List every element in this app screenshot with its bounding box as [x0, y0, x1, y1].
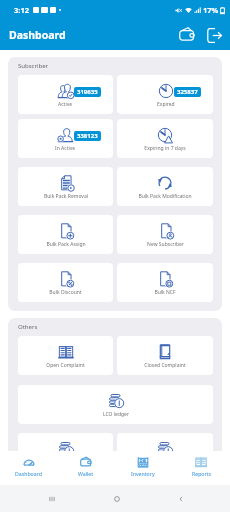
staticText: Bulk Discount [49, 289, 82, 296]
button[interactable] [18, 433, 113, 472]
button[interactable]: Bulk Pack Removal [18, 167, 113, 206]
staticText: Wallet [78, 470, 94, 477]
button[interactable]: Closed Complaint [117, 336, 213, 375]
staticText: Expired [157, 101, 175, 108]
button[interactable]: Open Complaint [18, 336, 113, 375]
staticText: 325837 [177, 88, 198, 96]
button[interactable]: Logout [200, 22, 226, 48]
staticText: Inventory [131, 470, 155, 477]
button[interactable]: 325837 [117, 75, 213, 114]
staticText: Expiring in 7 days [144, 145, 186, 152]
button[interactable]: Wallet [57, 451, 114, 485]
button[interactable]: Home [104, 486, 129, 511]
button[interactable]: 338123 [18, 119, 113, 158]
staticText: 17% [203, 5, 219, 15]
button[interactable]: Reports [172, 451, 230, 485]
staticText: Open Complaint [46, 362, 85, 369]
button[interactable]: Dashboard [0, 451, 57, 485]
button[interactable] [117, 433, 213, 472]
staticText: Bulk Pack Modification [138, 193, 192, 200]
staticText: Active [58, 101, 73, 108]
staticText: In Active [55, 145, 76, 152]
button[interactable]: Expiring in 7 days [117, 119, 213, 158]
button[interactable]: New Subscriber [117, 215, 213, 254]
staticText: Bulk NCF [154, 289, 176, 296]
staticText: 338123 [77, 132, 98, 140]
button[interactable]: Inventory [114, 451, 172, 485]
staticText: LCO ledger [103, 411, 129, 418]
staticText: Bulk Pack Removal [44, 193, 88, 200]
staticText: Subscriber [18, 62, 49, 70]
staticText: 319635 [77, 88, 98, 96]
staticText: 3:12 [14, 5, 29, 15]
staticText: Dashboard [15, 470, 42, 477]
staticText: New Subscriber [147, 241, 184, 248]
button[interactable]: Bulk Pack Modification [117, 167, 213, 206]
staticText: Dashboard [9, 28, 66, 42]
button[interactable]: Bulk NCF [117, 263, 213, 302]
button[interactable]: Wallet [174, 22, 200, 48]
button[interactable]: Recents [39, 486, 64, 511]
staticText: Closed Complaint [144, 362, 186, 369]
button[interactable]: Bulk Pack Assign [18, 215, 113, 254]
staticText: Bulk Pack Assign [46, 241, 86, 248]
button[interactable]: Back [168, 486, 193, 511]
button[interactable]: 319635 [18, 75, 113, 114]
button[interactable]: Bulk Discount [18, 263, 113, 302]
staticText: Reports [192, 470, 211, 477]
button[interactable]: LCO ledger [18, 385, 213, 424]
staticText: Others [18, 323, 38, 331]
